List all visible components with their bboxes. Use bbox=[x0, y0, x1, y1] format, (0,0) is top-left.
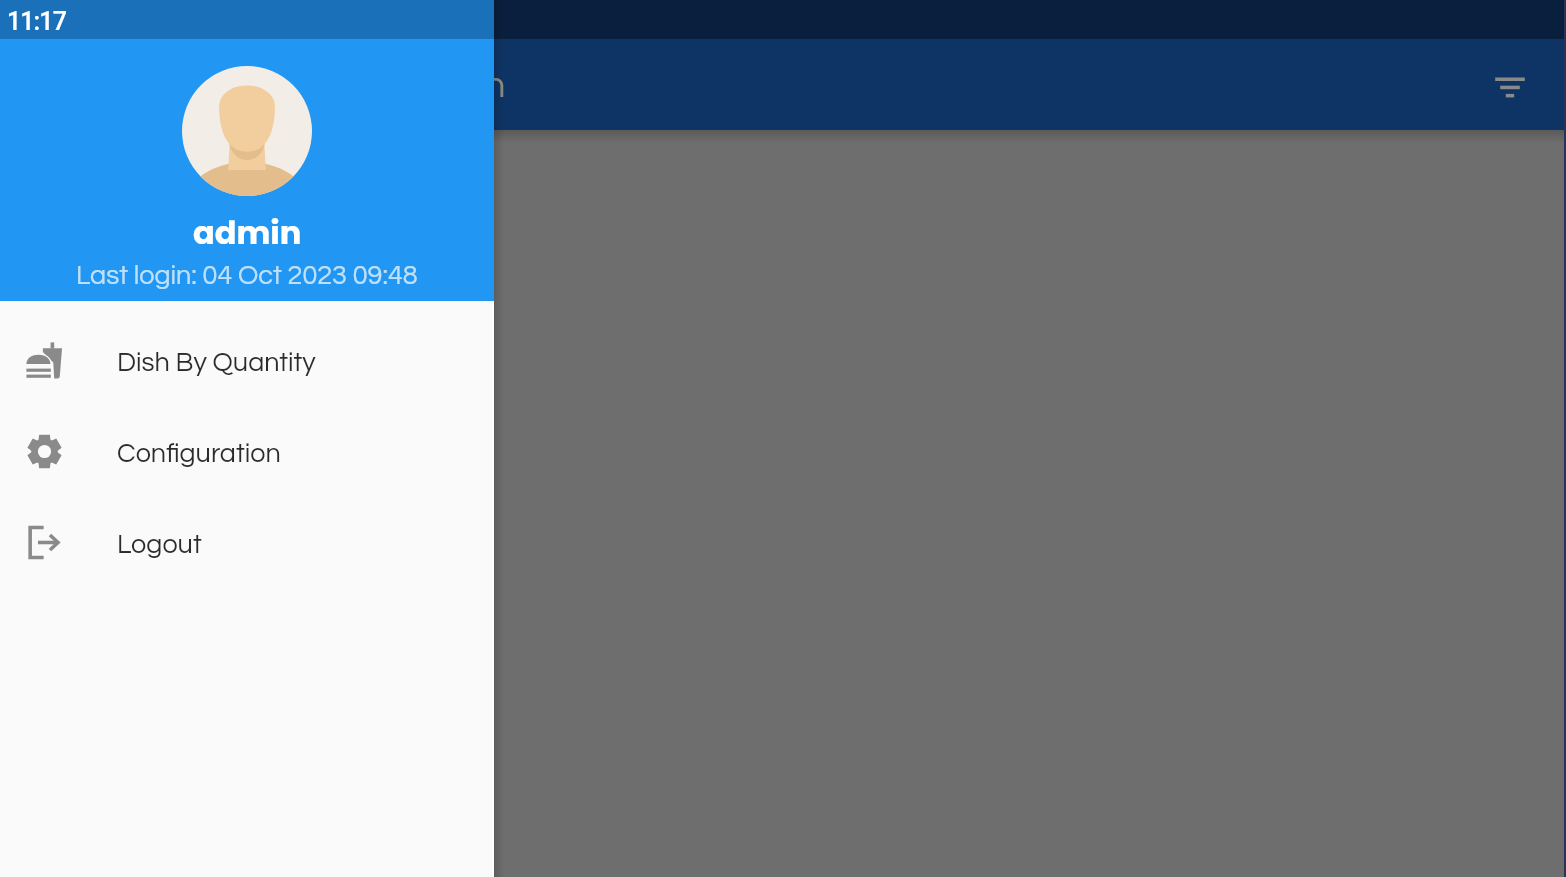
staticText: admin bbox=[193, 210, 302, 255]
staticText: Last login: 04 Oct 2023 09:48 bbox=[76, 262, 418, 290]
staticText: Configuration bbox=[117, 440, 281, 468]
button[interactable]: Close navigation drawer bbox=[0, 0, 1566, 877]
staticText: Configuration bbox=[281, 67, 506, 105]
button[interactable]: Filter bbox=[1486, 62, 1534, 110]
staticText: Logout bbox=[117, 531, 202, 559]
button[interactable]: Logout bbox=[0, 499, 494, 590]
staticText: 11:17 bbox=[7, 7, 66, 36]
button[interactable]: Dish By Quantity bbox=[0, 317, 494, 408]
staticText: Dish By Quantity bbox=[117, 349, 316, 377]
button[interactable]: Configuration bbox=[0, 408, 494, 499]
